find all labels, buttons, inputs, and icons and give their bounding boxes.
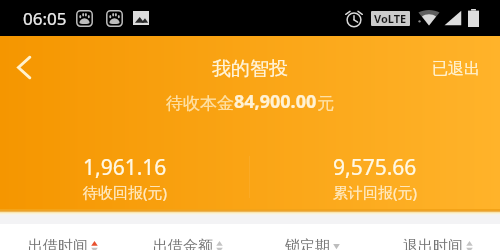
button[interactable]: 退出时间 (375, 224, 500, 250)
staticText: 退出时间 (403, 237, 463, 250)
staticText: 出借金额 (153, 237, 213, 250)
staticText: 待收回报(元) (83, 182, 168, 202)
button[interactable]: 锁定期 (250, 224, 375, 250)
staticText: 待收本金 (166, 93, 234, 114)
staticText: 出借时间 (28, 237, 88, 250)
staticText: 9,575.66 (333, 153, 417, 182)
button[interactable]: 出借时间 (0, 224, 125, 250)
staticText: 元 (317, 93, 334, 114)
staticText: 1,961.16 (83, 153, 167, 182)
staticText: 06:05 (23, 7, 67, 30)
staticText: 累计回报(元) (333, 182, 418, 202)
button[interactable]: Back (0, 45, 48, 93)
button[interactable]: 1,961.16 (0, 153, 250, 202)
staticText: VoLTE (374, 11, 407, 26)
staticText: 我的智投 (212, 57, 288, 81)
staticText: 84,900.00 (234, 89, 317, 114)
staticText: 已退出 (432, 59, 480, 79)
staticText: 锁定期 (285, 237, 330, 250)
button[interactable]: 出借金额 (125, 224, 250, 250)
button[interactable]: 9,575.66 (250, 153, 500, 202)
button[interactable]: 已退出 (412, 47, 500, 91)
